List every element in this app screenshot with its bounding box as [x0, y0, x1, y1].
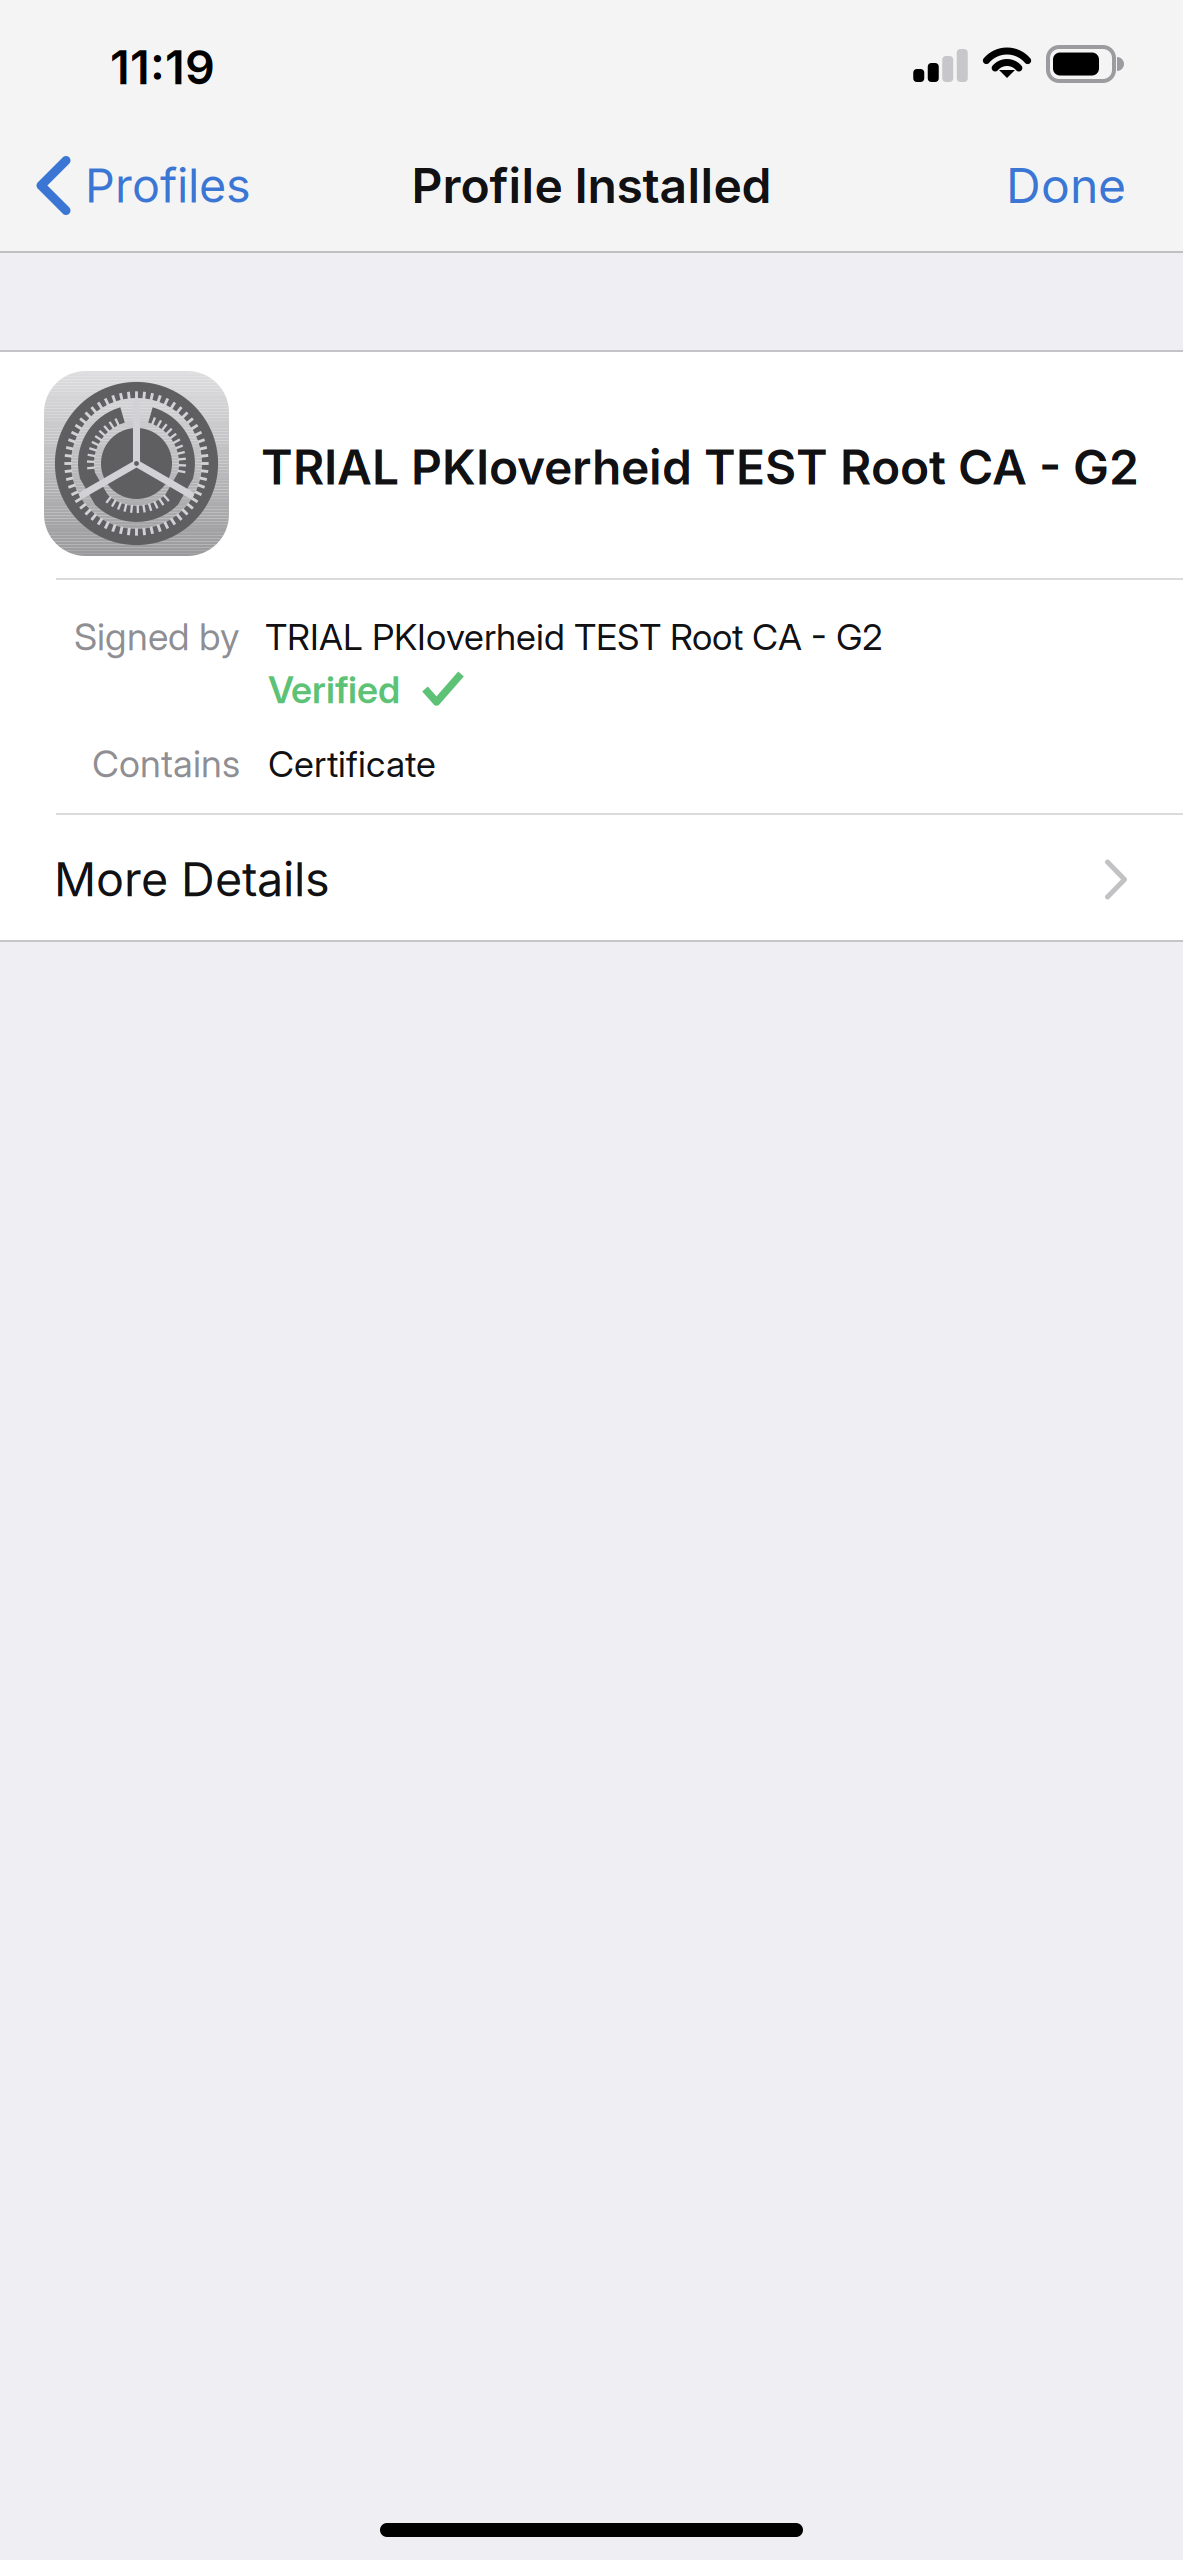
- button[interactable]: More Details: [0, 813, 1183, 942]
- staticText: Profiles: [85, 157, 251, 214]
- staticText: Contains: [92, 741, 240, 786]
- staticText: More Details: [54, 851, 330, 907]
- staticText: TRIAL PKIoverheid TEST Root CA - G2: [261, 438, 1139, 496]
- staticText: Signed by: [74, 614, 240, 659]
- button[interactable]: Back to Profiles: [0, 130, 271, 240]
- staticText: Certificate: [268, 742, 436, 786]
- staticText: Done: [1006, 156, 1126, 215]
- staticText: 11:19: [110, 39, 215, 95]
- staticText: Verified: [268, 667, 400, 712]
- button[interactable]: Done: [976, 130, 1183, 240]
- staticText: TRIAL PKIoverheid TEST Root CA - G2: [265, 615, 883, 659]
- staticText: Profile Installed: [411, 156, 771, 215]
